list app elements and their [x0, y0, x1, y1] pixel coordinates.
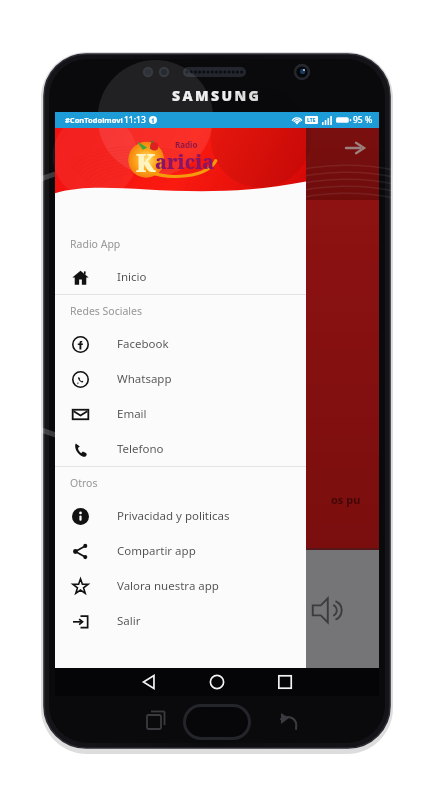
button[interactable]: Email [55, 396, 306, 431]
button[interactable]: Telefono [55, 431, 306, 466]
button[interactable]: Valora nuestra app [55, 568, 306, 603]
staticText: Valora nuestra app [117, 578, 219, 594]
staticText: Compartir app [117, 543, 196, 559]
staticText: os pu [331, 492, 361, 507]
staticText: Facebook [117, 336, 169, 352]
button[interactable]: Inicio [55, 259, 306, 294]
staticText: Whatsapp [117, 371, 172, 387]
button[interactable]: Facebook [55, 326, 306, 361]
button[interactable]: Forward [341, 134, 369, 162]
staticText: Radio App [70, 237, 121, 251]
button[interactable]: Whatsapp [55, 361, 306, 396]
staticText: 11:13 [124, 114, 146, 126]
button[interactable]: Privacidad y politicas [55, 498, 306, 533]
button[interactable]: Compartir app [55, 533, 306, 568]
staticText: aricia [155, 149, 215, 175]
staticText: Redes Sociales [70, 304, 143, 318]
staticText: Telefono [117, 441, 164, 457]
staticText: LTE [307, 117, 316, 124]
staticText: Salir [117, 613, 141, 629]
staticText: Otros [70, 476, 98, 490]
staticText: SAMSUNG [172, 86, 262, 105]
staticText: 95 % [353, 114, 373, 126]
staticText: Privacidad y politicas [117, 508, 230, 524]
staticText: Inicio [117, 269, 147, 285]
staticText: Radio [175, 139, 198, 150]
staticText: K [136, 145, 156, 179]
staticText: Email [117, 406, 147, 422]
button[interactable]: Salir [55, 603, 306, 638]
staticText: #ConTodolmovi [65, 115, 123, 125]
